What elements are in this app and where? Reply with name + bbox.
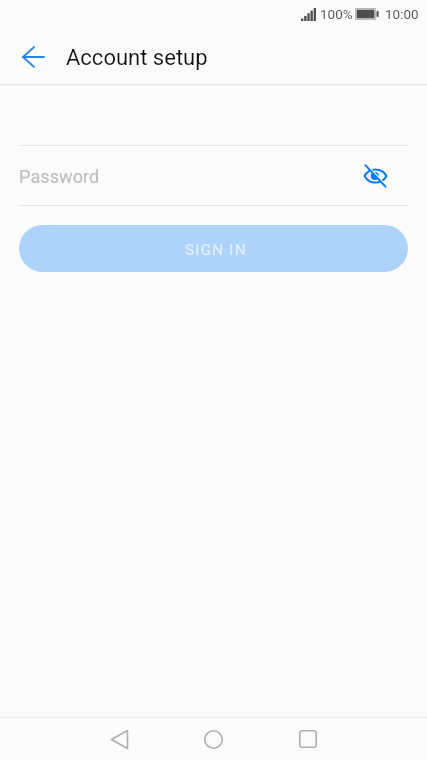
button[interactable]: Recent apps	[289, 720, 327, 758]
staticText: Password	[19, 166, 100, 187]
staticText: 10:00	[385, 6, 419, 22]
button[interactable]: Show password	[355, 155, 396, 196]
button[interactable]: Home	[194, 720, 232, 758]
staticText: Account setup	[66, 45, 208, 71]
button[interactable]: SIGN IN	[19, 225, 408, 272]
staticText: SIGN IN	[185, 241, 247, 259]
button[interactable]: Back	[100, 720, 138, 758]
staticText: 100%	[320, 6, 353, 22]
button[interactable]: Back	[9, 33, 57, 81]
